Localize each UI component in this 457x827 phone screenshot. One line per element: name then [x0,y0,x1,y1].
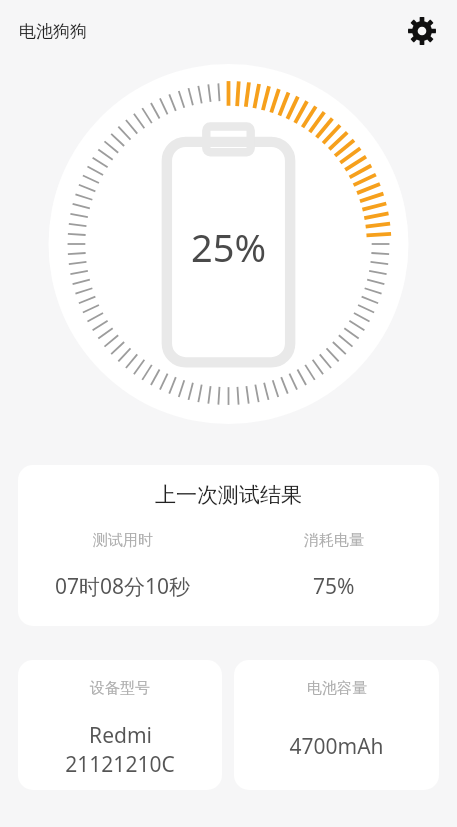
button[interactable]: Settings [399,8,445,54]
staticText: 25% [191,221,267,273]
staticText: 电池容量 [307,679,367,698]
staticText: 21121210C [65,750,175,779]
staticText: 上一次测试结果 [155,482,302,508]
button[interactable]: 上一次测试结果 [18,465,439,626]
staticText: 07时08分10秒 [55,572,191,601]
staticText: 设备型号 [90,679,150,698]
staticText: 电池狗狗 [19,21,87,42]
staticText: 75% [313,572,355,601]
staticText: 4700mAh [289,732,384,761]
staticText: Redmi [89,721,152,750]
button[interactable]: 电池容量 [234,660,439,790]
staticText: 测试用时 [93,531,153,550]
button[interactable]: 设备型号 [18,660,222,790]
staticText: 消耗电量 [304,531,364,550]
